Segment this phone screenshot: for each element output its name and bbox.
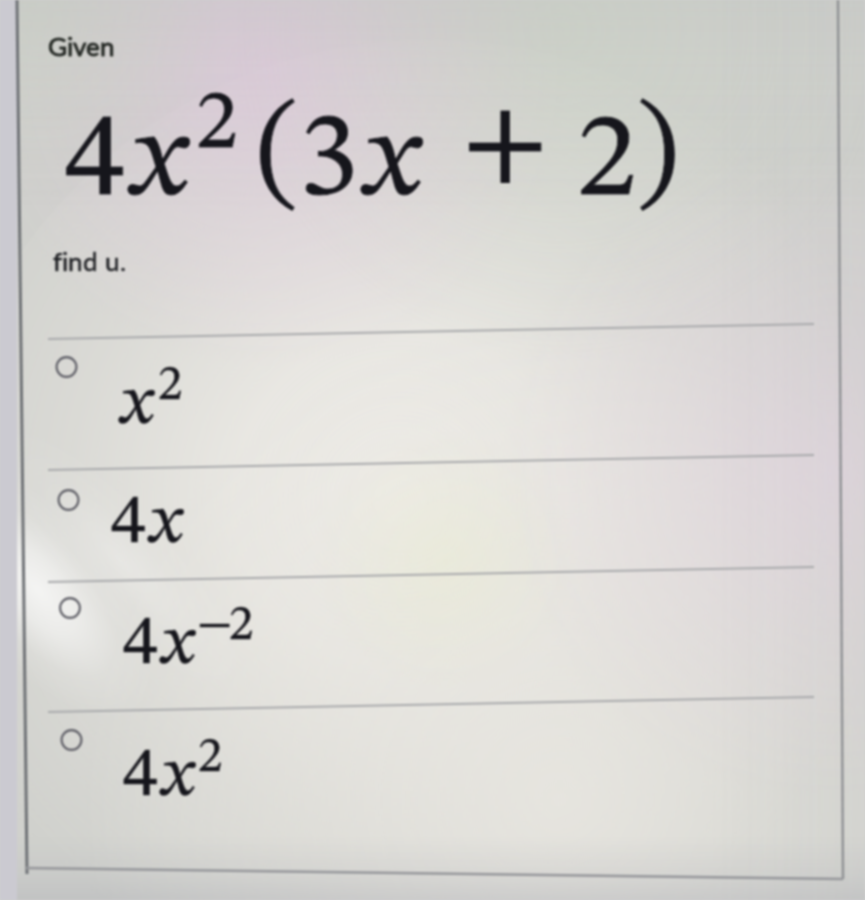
button[interactable]: Answer: x squared [24, 332, 819, 463]
button[interactable]: Answer: 4 x squared [24, 705, 819, 863]
button[interactable]: Answer: x squared [0, 0, 865, 900]
button[interactable]: Answer: 4 x to the power minus 2 [24, 575, 819, 705]
button[interactable]: Answer: 4 x [24, 463, 819, 575]
